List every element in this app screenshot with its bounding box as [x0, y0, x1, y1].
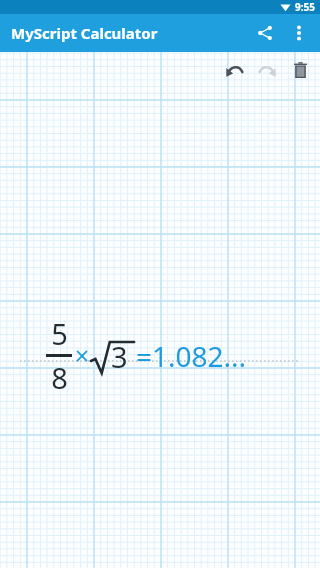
button[interactable]: Share [248, 16, 282, 50]
button[interactable]: 5 [44, 314, 247, 397]
staticText: 8 [51, 358, 68, 397]
staticText: MyScript Calculator [11, 23, 158, 43]
staticText: 3 [111, 337, 128, 376]
button[interactable]: More options [282, 16, 316, 50]
button[interactable]: Redo [252, 55, 282, 85]
staticText: 5 [51, 314, 68, 353]
button[interactable]: Undo [219, 55, 249, 85]
staticText: 9:55 [295, 0, 315, 14]
button[interactable]: Delete [285, 55, 315, 85]
staticText: =1.082... [136, 337, 247, 375]
